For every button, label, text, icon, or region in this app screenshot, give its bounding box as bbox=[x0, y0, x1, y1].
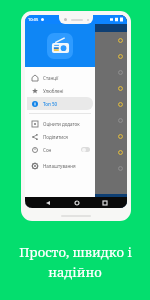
staticText: Налаштування bbox=[43, 163, 76, 169]
staticText: Просто, швидко і bbox=[19, 243, 132, 261]
staticText: Люкс bbox=[42, 54, 53, 59]
button[interactable]: Оцінити додаток bbox=[27, 117, 93, 130]
button[interactable]: Станції bbox=[27, 71, 93, 84]
staticText: Європа FM — Найкраще bbox=[42, 150, 90, 155]
button[interactable]: Ретро — Золотые Хиты bbox=[25, 96, 127, 112]
staticText: Країна FM bbox=[42, 86, 62, 91]
button[interactable]: Русские Хиты bbox=[25, 128, 127, 144]
button[interactable]: Сон bbox=[27, 143, 93, 156]
button[interactable]: Країна FM bbox=[25, 80, 127, 96]
button[interactable]: Люкс bbox=[25, 48, 127, 64]
staticText: Оцінити додаток bbox=[43, 121, 80, 127]
button[interactable]: Наше Radio bbox=[25, 112, 127, 128]
button[interactable]: Джаз FM bbox=[25, 160, 127, 176]
button[interactable]: Поділитися bbox=[27, 130, 93, 143]
staticText: Топ 50 bbox=[43, 101, 58, 107]
button[interactable]: Європа FM — Найкраще bbox=[25, 144, 127, 160]
staticText: Станції bbox=[43, 75, 59, 81]
staticText: Русские Хиты bbox=[42, 134, 68, 139]
staticText: Хіт FM bbox=[42, 38, 54, 43]
button[interactable]: Улюблені bbox=[27, 84, 93, 97]
button[interactable]: Топ 50 bbox=[27, 97, 93, 110]
button[interactable]: Хіт FM bbox=[25, 32, 127, 48]
staticText: Ретро — Золотые Хиты bbox=[42, 102, 87, 107]
staticText: Поділитися bbox=[43, 134, 68, 140]
staticText: Улюблені bbox=[43, 88, 64, 94]
staticText: 10:05 bbox=[28, 17, 39, 22]
staticText: Сон bbox=[43, 147, 52, 153]
button[interactable]: Back bbox=[42, 197, 53, 208]
button[interactable]: Налаштування bbox=[27, 159, 93, 172]
staticText: Джаз FM bbox=[42, 166, 59, 171]
staticText: Наше Radio bbox=[42, 118, 65, 123]
staticText: надійно bbox=[48, 263, 102, 281]
button[interactable]: Recents bbox=[99, 197, 110, 208]
button[interactable]: Home bbox=[71, 197, 82, 208]
button[interactable]: Радіо Обожнюю bbox=[25, 64, 127, 80]
